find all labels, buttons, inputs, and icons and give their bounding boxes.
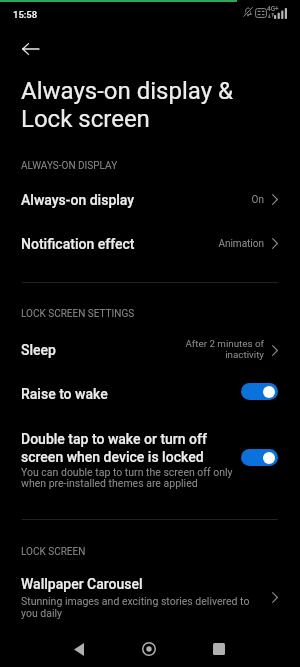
- staticText: Stunning images and exciting stories del…: [21, 595, 250, 620]
- staticText: 15:58: [13, 9, 38, 20]
- staticText: LOCK SCREEN SETTINGS: [21, 308, 135, 320]
- staticText: Raise to wake: [21, 386, 108, 402]
- button[interactable]: Recent apps: [197, 627, 241, 667]
- staticText: Always-on display & Lock screen: [21, 77, 233, 133]
- staticText: Wallpaper Carousel: [21, 576, 143, 592]
- button[interactable]: [0, 423, 300, 487]
- button[interactable]: Toggle switch, on: [241, 449, 278, 466]
- button[interactable]: [0, 328, 300, 366]
- button[interactable]: Toggle switch, on: [241, 383, 278, 400]
- button[interactable]: Back: [57, 627, 101, 667]
- staticText: Sleep: [21, 342, 56, 358]
- staticText: After 2 minutes of inactivity: [140, 338, 264, 360]
- staticText: On: [251, 194, 264, 206]
- staticText: Animation: [218, 238, 264, 250]
- button[interactable]: [0, 568, 300, 620]
- staticText: ALWAYS-ON DISPLAY: [21, 160, 118, 172]
- button[interactable]: Navigate up: [10, 34, 50, 63]
- staticText: Double tap to wake or turn off screen wh…: [21, 431, 236, 466]
- button[interactable]: Home: [127, 627, 171, 667]
- button[interactable]: [0, 374, 300, 407]
- staticText: Notification effect: [21, 236, 135, 252]
- staticText: 4G+: [267, 5, 279, 13]
- staticText: Always-on display: [21, 192, 135, 208]
- staticText: You can double tap to turn the screen of…: [21, 466, 233, 490]
- button[interactable]: [0, 180, 300, 213]
- staticText: LOCK SCREEN: [21, 546, 86, 558]
- button[interactable]: [0, 224, 300, 257]
